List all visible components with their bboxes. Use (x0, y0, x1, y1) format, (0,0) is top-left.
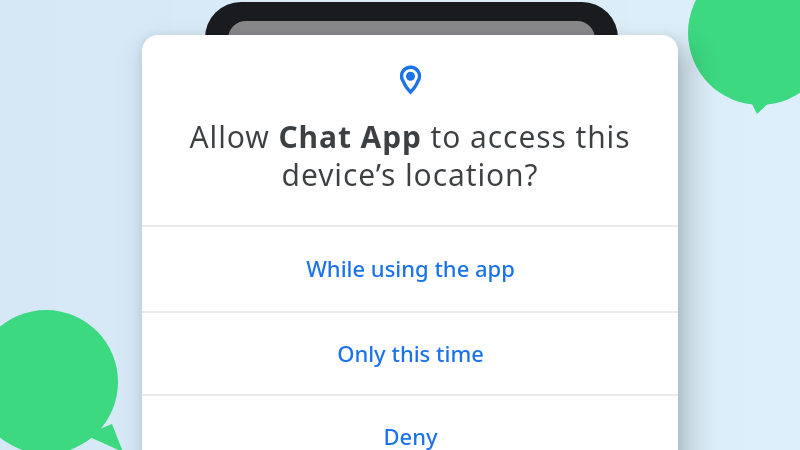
button[interactable]: Deny (142, 394, 678, 450)
button[interactable]: While using the app (142, 225, 678, 311)
staticText: While using the app (306, 253, 515, 283)
staticText: Deny (383, 421, 438, 450)
button[interactable]: Only this time (142, 311, 678, 394)
staticText: Only this time (337, 338, 484, 368)
staticText: Allow Chat App to access this device’s l… (142, 116, 678, 195)
